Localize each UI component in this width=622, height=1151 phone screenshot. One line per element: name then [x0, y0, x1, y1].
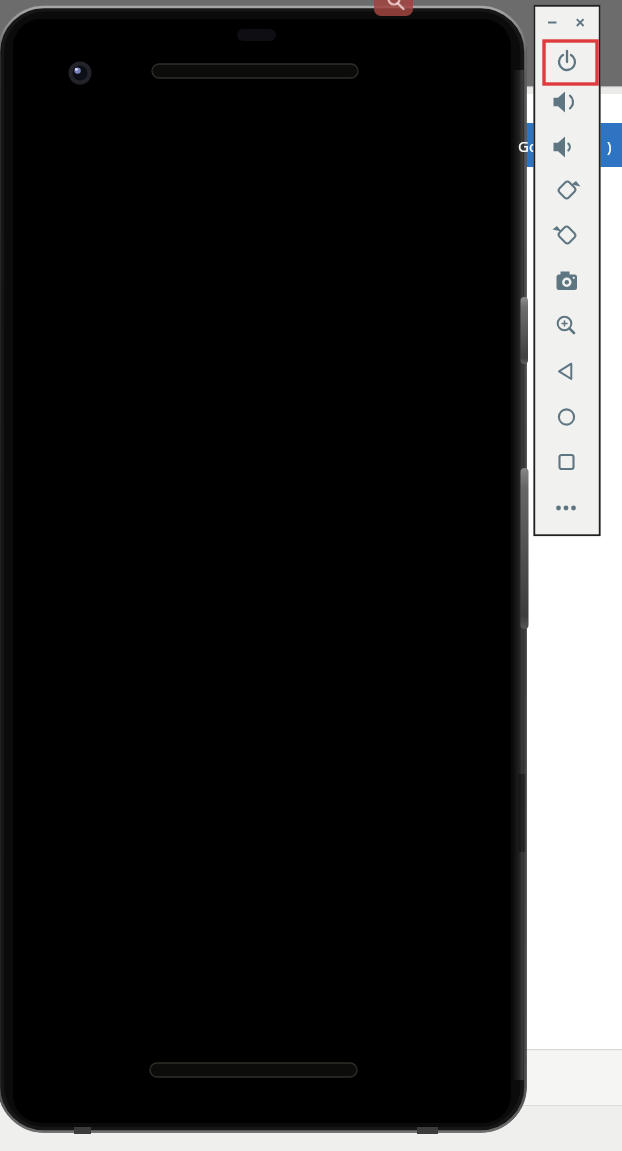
button[interactable] [547, 127, 587, 167]
button[interactable] [547, 397, 587, 437]
button[interactable] [547, 306, 587, 346]
button[interactable] [547, 261, 587, 301]
button[interactable] [547, 215, 587, 255]
staticText: Go [518, 136, 538, 156]
button[interactable] [547, 351, 587, 391]
button[interactable] [547, 170, 587, 210]
button[interactable] [546, 41, 588, 83]
button[interactable] [547, 488, 587, 528]
button[interactable] [547, 442, 587, 482]
button[interactable] [572, 14, 589, 31]
staticText: ) [607, 136, 612, 156]
button[interactable] [547, 82, 587, 122]
button[interactable] [544, 14, 561, 31]
